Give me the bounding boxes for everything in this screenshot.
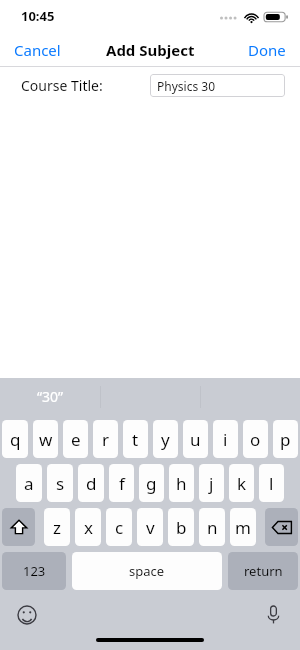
- button[interactable]: i: [213, 420, 238, 458]
- staticText: z: [53, 516, 61, 539]
- staticText: p: [280, 428, 291, 451]
- staticText: q: [10, 428, 21, 451]
- staticText: b: [176, 516, 187, 539]
- button[interactable]: y: [153, 420, 178, 458]
- button[interactable]: Cancel: [0, 36, 75, 64]
- button[interactable]: l: [259, 464, 284, 502]
- button[interactable]: a: [16, 464, 42, 502]
- staticText: Physics 30: [157, 78, 215, 94]
- staticText: j: [209, 472, 214, 495]
- button[interactable]: p: [273, 420, 298, 458]
- staticText: t: [132, 428, 139, 451]
- staticText: s: [56, 472, 65, 495]
- staticText: return: [244, 562, 283, 580]
- staticText: w: [39, 428, 53, 451]
- button[interactable]: e: [63, 420, 88, 458]
- staticText: d: [86, 472, 97, 495]
- button[interactable]: j: [199, 464, 224, 502]
- button[interactable]: x: [75, 508, 101, 546]
- staticText: o: [250, 428, 261, 451]
- staticText: space: [129, 562, 165, 580]
- button[interactable]: Physics 30: [150, 74, 285, 97]
- button[interactable]: c: [106, 508, 132, 546]
- button[interactable]: m: [230, 508, 256, 546]
- button[interactable]: g: [139, 464, 164, 502]
- button[interactable]: d: [78, 464, 104, 502]
- staticText: e: [71, 428, 81, 451]
- button[interactable]: r: [93, 420, 118, 458]
- button[interactable]: w: [33, 420, 58, 458]
- button[interactable]: “30”: [0, 378, 100, 415]
- staticText: f: [119, 472, 125, 495]
- button[interactable]: t: [123, 420, 148, 458]
- staticText: i: [223, 428, 228, 451]
- staticText: y: [161, 428, 170, 451]
- staticText: a: [24, 472, 34, 495]
- staticText: “30”: [37, 387, 64, 406]
- staticText: h: [176, 472, 187, 495]
- staticText: 10:45: [21, 7, 55, 25]
- button[interactable]: s: [47, 464, 73, 502]
- staticText: v: [146, 516, 155, 539]
- button[interactable]: return: [228, 552, 298, 590]
- button[interactable]: Dictation: [260, 602, 286, 628]
- button[interactable]: h: [169, 464, 194, 502]
- staticText: r: [102, 428, 110, 451]
- button[interactable]: Shift: [2, 508, 35, 546]
- button[interactable]: z: [44, 508, 70, 546]
- staticText: u: [190, 428, 201, 451]
- button[interactable]: q: [2, 420, 28, 458]
- staticText: Course Title:: [21, 76, 103, 95]
- button[interactable]: Backspace: [265, 508, 298, 546]
- staticText: Done: [248, 40, 286, 60]
- button[interactable]: 123: [2, 552, 66, 590]
- button[interactable]: o: [243, 420, 268, 458]
- button[interactable]: Done: [234, 36, 300, 64]
- button[interactable]: Emoji: [14, 602, 40, 628]
- button[interactable]: space: [72, 552, 222, 590]
- staticText: c: [115, 516, 124, 539]
- button[interactable]: k: [229, 464, 254, 502]
- button[interactable]: v: [137, 508, 163, 546]
- staticText: m: [235, 516, 251, 539]
- button[interactable]: f: [109, 464, 134, 502]
- staticText: x: [84, 516, 93, 539]
- staticText: l: [269, 472, 274, 495]
- staticText: g: [146, 472, 157, 495]
- button[interactable]: b: [168, 508, 194, 546]
- staticText: n: [207, 516, 218, 539]
- button[interactable]: u: [183, 420, 208, 458]
- staticText: Cancel: [14, 40, 61, 60]
- staticText: Add Subject: [106, 40, 195, 60]
- staticText: k: [237, 472, 247, 495]
- button[interactable]: n: [199, 508, 225, 546]
- staticText: 123: [23, 562, 46, 580]
